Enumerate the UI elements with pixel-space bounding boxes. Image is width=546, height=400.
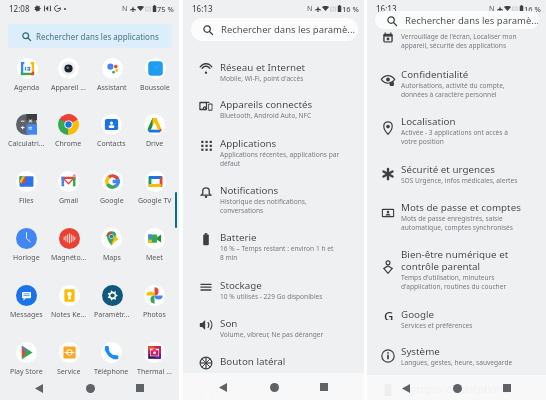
button[interactable]: Stockage: [220, 279, 362, 301]
button[interactable]: Files: [5, 171, 48, 205]
button[interactable]: Notifications: [220, 184, 362, 215]
button[interactable]: Stockage: [199, 280, 213, 294]
button[interactable]: Boussole: [133, 58, 176, 92]
button[interactable]: Localisation: [401, 115, 531, 146]
button[interactable]: Agenda: [5, 58, 48, 92]
button[interactable]: Maps: [90, 228, 133, 262]
button[interactable]: Appareils connectés: [199, 99, 213, 113]
button[interactable]: Confidentialité: [381, 73, 395, 87]
button[interactable]: Bouton latéral: [199, 356, 213, 370]
button[interactable]: Téléphone: [90, 342, 133, 376]
staticText: Volume, vibreur, Ne pas déranger: [220, 330, 342, 339]
button[interactable]: Home: [263, 376, 285, 398]
staticText: Téléphone: [94, 367, 129, 376]
button[interactable]: Drive: [133, 114, 176, 148]
staticText: Google: [401, 308, 435, 321]
button[interactable]: Calculatri...: [5, 114, 48, 148]
staticText: Contacts: [97, 139, 126, 148]
button[interactable]: Bien-être numérique et contrôle parental: [381, 260, 395, 274]
staticText: Agenda: [14, 83, 40, 92]
button[interactable]: Bouton latéral: [220, 355, 362, 368]
button[interactable]: Localisation: [381, 121, 395, 135]
button[interactable]: Rechercher dans les paramè...: [375, 11, 539, 29]
button[interactable]: Réseau et Internet: [199, 62, 213, 76]
button[interactable]: Gmail: [47, 171, 90, 205]
button[interactable]: Paramètr...: [90, 285, 133, 319]
staticText: Play Store: [10, 367, 43, 376]
staticText: Sécurité et urgences: [401, 163, 495, 176]
staticText: Applications: [220, 137, 277, 150]
staticText: 16:13: [192, 3, 213, 14]
button[interactable]: Contacts: [90, 114, 133, 148]
button[interactable]: Système: [381, 349, 395, 363]
button[interactable]: Confidentialité: [401, 68, 531, 99]
button[interactable]: Horloge: [5, 228, 48, 262]
button[interactable]: Bien-être numérique et contrôle parental: [401, 248, 511, 291]
staticText: Meet: [146, 253, 163, 262]
button[interactable]: Back: [212, 376, 234, 398]
button[interactable]: Magnéto...: [47, 228, 90, 262]
staticText: N: [307, 4, 313, 14]
staticText: SOS Urgence, infos médicales, alertes: [401, 176, 523, 185]
button[interactable]: Thermal ...: [133, 342, 176, 376]
button[interactable]: Service: [47, 342, 90, 376]
staticText: Notifications: [220, 184, 279, 197]
button[interactable]: Back: [28, 377, 50, 399]
staticText: Service: [57, 367, 81, 376]
button[interactable]: Notes Ke...: [47, 285, 90, 319]
button[interactable]: Google: [401, 308, 523, 330]
staticText: N: [489, 4, 495, 14]
button[interactable]: Recents: [496, 377, 518, 399]
button[interactable]: Meet: [133, 228, 176, 262]
staticText: À propos du téléphone: [401, 382, 509, 396]
staticText: Son: [220, 317, 238, 330]
button[interactable]: Messages: [5, 285, 48, 319]
button[interactable]: Rechercher dans les applications: [8, 24, 172, 48]
button[interactable]: Assistant: [90, 58, 133, 92]
staticText: Localisation: [401, 115, 456, 128]
button[interactable]: Sécurité et urgences: [401, 163, 543, 185]
button[interactable]: Rechercher dans les paramè...: [191, 18, 358, 41]
button[interactable]: Applications: [220, 137, 362, 168]
button[interactable]: Back: [395, 377, 417, 399]
button[interactable]: Google: [90, 171, 133, 205]
button[interactable]: Sécurité: [381, 31, 395, 45]
staticText: Gmail: [59, 196, 79, 205]
button[interactable]: Recents: [313, 376, 335, 398]
button[interactable]: Batterie: [220, 231, 362, 262]
staticText: Thermal ...: [137, 367, 172, 376]
button[interactable]: Google TV: [133, 171, 176, 205]
button[interactable]: Home: [446, 377, 468, 399]
staticText: Google: [100, 196, 124, 205]
button[interactable]: Appareil ...: [47, 58, 90, 92]
staticText: Verrouillage de l'écran, Localiser mon a…: [401, 32, 523, 50]
staticText: 16 % – Temps restant : environ 1 h et 8 …: [220, 244, 334, 262]
staticText: Magnéto...: [51, 253, 87, 262]
staticText: G: [384, 307, 394, 320]
button[interactable]: Google: [382, 307, 395, 320]
button[interactable]: Chrome: [47, 114, 90, 148]
button[interactable]: Sécurité et urgences: [381, 167, 395, 181]
button[interactable]: Applications: [199, 138, 213, 152]
staticText: Appareils connectés: [220, 98, 313, 111]
button[interactable]: Play Store: [5, 342, 48, 376]
button[interactable]: Son: [199, 318, 213, 332]
button[interactable]: Mots de passe et comptes: [401, 201, 531, 232]
staticText: Chrome: [55, 139, 82, 148]
staticText: Notes Ke...: [51, 310, 87, 319]
staticText: Rechercher dans les paramè...: [405, 14, 539, 27]
button[interactable]: Système: [401, 345, 543, 367]
button[interactable]: Photos: [133, 285, 176, 319]
staticText: Écran: [220, 386, 247, 400]
button[interactable]: Home: [79, 377, 101, 399]
staticText: Assistant: [97, 83, 127, 92]
staticText: Langues, gestes, heure, sauvegarde: [401, 358, 523, 367]
button[interactable]: Mots de passe et comptes: [381, 206, 395, 220]
button[interactable]: Appareils connectés: [220, 98, 362, 120]
button[interactable]: Recents: [129, 377, 151, 399]
button[interactable]: Son: [220, 317, 362, 339]
button[interactable]: Batterie: [199, 232, 213, 246]
button[interactable]: Notifications: [199, 185, 213, 199]
button[interactable]: Réseau et Internet: [220, 61, 362, 83]
staticText: 75 %: [157, 4, 174, 14]
